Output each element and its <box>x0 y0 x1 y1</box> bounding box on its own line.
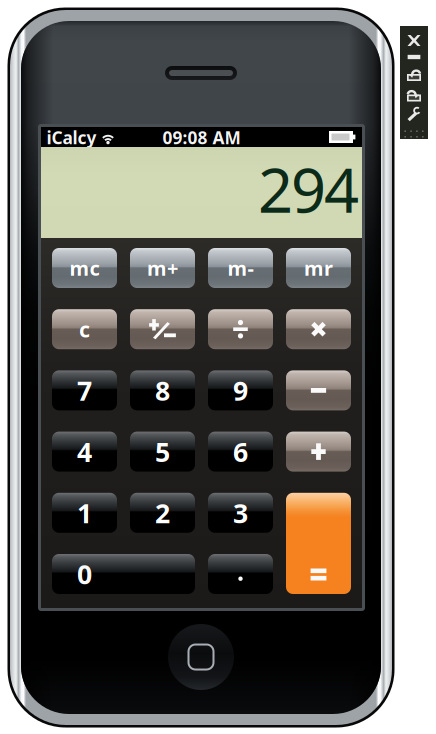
button[interactable]: mr <box>286 248 351 288</box>
staticText: mr <box>304 255 333 281</box>
staticText: 9 <box>233 373 248 408</box>
button[interactable]: 8 <box>130 370 195 410</box>
button[interactable]: Rotate right <box>400 84 428 104</box>
button[interactable]: Divide <box>208 309 273 349</box>
staticText: 7 <box>77 373 92 408</box>
button[interactable]: Equals <box>286 493 351 594</box>
button[interactable]: 2 <box>130 493 195 533</box>
staticText: 5 <box>155 434 170 469</box>
staticText: 8 <box>155 373 170 408</box>
button[interactable]: 9 <box>208 370 273 410</box>
staticText: 9 <box>291 148 340 230</box>
button[interactable]: Multiply <box>286 309 351 349</box>
button[interactable]: Decimal point <box>208 554 273 594</box>
button[interactable]: Rotate left <box>400 64 428 83</box>
button[interactable]: 7 <box>52 370 117 410</box>
button[interactable]: 4 <box>52 432 117 472</box>
staticText: 1 <box>77 495 92 530</box>
button[interactable]: Close <box>400 31 428 50</box>
staticText: c <box>79 315 90 343</box>
staticText: 3 <box>233 495 248 530</box>
staticText: iCalcy <box>46 126 96 149</box>
staticText: 09:08 AM <box>162 126 240 149</box>
button[interactable]: Settings <box>400 105 428 124</box>
staticText: 4 <box>77 434 92 469</box>
staticText: 0 <box>77 556 92 592</box>
staticText: m- <box>227 255 253 281</box>
button[interactable]: Home <box>168 624 234 690</box>
staticText: m+ <box>147 255 178 281</box>
button[interactable]: Minus <box>286 370 351 410</box>
button[interactable]: Minimize <box>400 50 428 64</box>
staticText: 2 <box>155 495 170 530</box>
button[interactable]: m- <box>208 248 273 288</box>
button[interactable]: m+ <box>130 248 195 288</box>
button[interactable]: 0 <box>52 554 195 594</box>
staticText: 6 <box>233 434 248 469</box>
staticText: 2 <box>258 148 307 230</box>
button[interactable]: c <box>52 309 117 349</box>
staticText: 4 <box>324 148 373 230</box>
button[interactable]: mc <box>52 248 117 288</box>
button[interactable]: Plus <box>286 432 351 472</box>
button[interactable]: 5 <box>130 432 195 472</box>
button[interactable]: 3 <box>208 493 273 533</box>
button[interactable]: 1 <box>52 493 117 533</box>
button[interactable]: Plus minus <box>130 309 195 349</box>
staticText: mc <box>69 255 99 281</box>
button[interactable]: 6 <box>208 432 273 472</box>
